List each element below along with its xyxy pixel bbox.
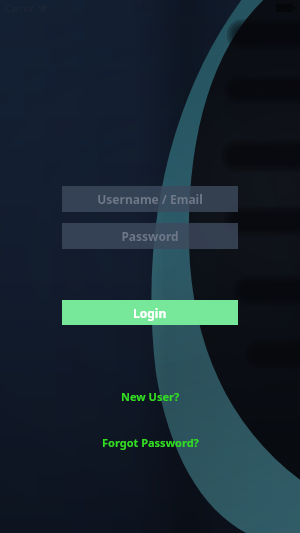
button[interactable]: New User? — [111, 386, 190, 407]
staticText: Login — [133, 305, 167, 321]
staticText: Forgot Password? — [102, 435, 199, 450]
staticText: Password — [121, 228, 179, 244]
button[interactable]: Forgot Password? — [92, 432, 209, 453]
staticText: New User? — [121, 389, 180, 404]
button[interactable]: Login — [62, 300, 238, 325]
button[interactable]: Username / Email — [62, 186, 238, 212]
staticText: Username / Email — [97, 191, 203, 207]
button[interactable]: Password — [62, 223, 238, 249]
